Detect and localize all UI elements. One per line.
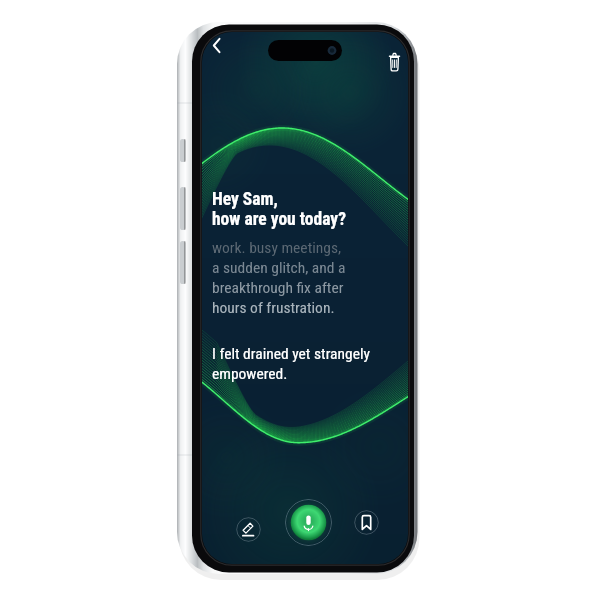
button[interactable]: Bookmark — [354, 510, 379, 535]
staticText: Hey Sam, — [212, 189, 278, 210]
button[interactable]: Delete — [383, 45, 406, 68]
staticText: hours of frustration. — [212, 299, 335, 317]
staticText: work. busy meetings, — [212, 239, 342, 257]
staticText: breakthrough fix after — [212, 279, 344, 297]
button[interactable]: Record voice note — [285, 499, 332, 546]
staticText: a sudden glitch, and a — [212, 259, 346, 277]
staticText: I felt drained yet strangely — [212, 345, 370, 363]
button[interactable]: Back — [206, 34, 230, 58]
button[interactable]: Edit — [236, 517, 261, 542]
staticText: how are you today? — [212, 209, 346, 230]
staticText: empowered. — [212, 365, 288, 383]
